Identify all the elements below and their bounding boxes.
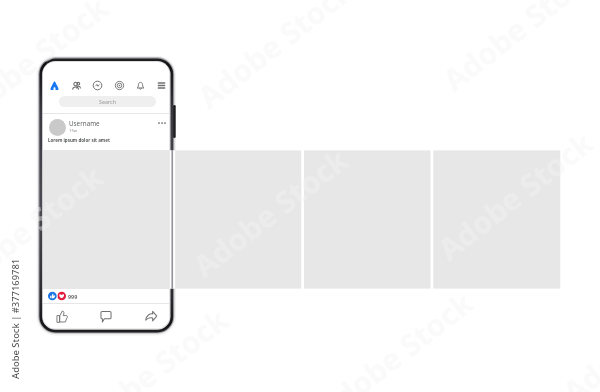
- staticText: 15w: [69, 128, 78, 134]
- button[interactable]: More options: [155, 116, 169, 130]
- staticText: Adobe Stock: [184, 139, 356, 286]
- button[interactable]: Like: [52, 306, 72, 326]
- button[interactable]: Notifications: [131, 76, 149, 94]
- button[interactable]: Friends: [67, 76, 85, 94]
- staticText: Adobe Stock: [64, 299, 236, 392]
- button[interactable]: 999: [43, 289, 169, 303]
- button[interactable]: Messenger: [88, 76, 106, 94]
- staticText: Adobe Stock: [429, 122, 600, 269]
- button[interactable]: Watch: [110, 76, 128, 94]
- button[interactable]: Home: [45, 76, 63, 94]
- staticText: Adobe Stock: [0, 0, 116, 134]
- button[interactable]: Comment: [96, 306, 116, 326]
- button[interactable]: Profile picture: [49, 119, 66, 136]
- staticText: 999: [68, 293, 78, 300]
- staticText: Adobe Stock | #377169781: [9, 258, 22, 379]
- staticText: Adobe Stock: [554, 265, 600, 392]
- button[interactable]: Share: [141, 306, 161, 326]
- staticText: Lorem ipsum dolor sit amet: [48, 137, 110, 143]
- button[interactable]: Search: [59, 96, 156, 107]
- staticText: Search: [99, 98, 117, 105]
- staticText: Username: [69, 119, 100, 128]
- button[interactable]: Menu: [152, 76, 169, 94]
- staticText: Adobe Stock: [0, 156, 111, 303]
- staticText: Adobe Stock: [309, 282, 481, 392]
